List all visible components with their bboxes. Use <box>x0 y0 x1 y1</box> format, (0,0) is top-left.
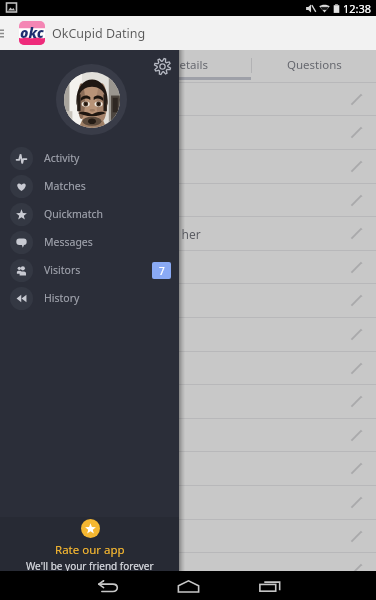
staticText: Sign <box>14 293 39 309</box>
button[interactable]: Quickmatch <box>0 200 179 228</box>
button[interactable]: Questions <box>252 50 376 80</box>
staticText: OkCupid Dating <box>52 25 146 42</box>
button[interactable]: Recents <box>254 573 286 599</box>
button[interactable]: Sign <box>0 284 376 317</box>
staticText: Diet <box>14 193 37 209</box>
staticText: Quickmatch <box>44 207 104 221</box>
staticText: History <box>44 291 80 305</box>
staticText: Ethnicity <box>14 92 63 108</box>
button[interactable]: Back <box>92 573 124 599</box>
button[interactable]: Education <box>0 318 376 351</box>
staticText: Rate our app <box>55 542 125 558</box>
staticText: okc <box>20 23 44 42</box>
button[interactable]: History <box>0 284 179 312</box>
staticText: Messages <box>44 235 93 249</box>
staticText: Details <box>171 57 208 73</box>
button[interactable]: Offspring <box>0 452 376 485</box>
button[interactable]: Religion <box>0 251 376 284</box>
button[interactable]: Languages <box>0 553 376 586</box>
button[interactable]: Body type <box>0 150 376 183</box>
staticText: Languages <box>14 562 76 578</box>
button[interactable]: Matches <box>0 172 179 200</box>
staticText: The six things I value without her <box>14 226 201 242</box>
button[interactable]: Diet <box>0 184 376 217</box>
button[interactable]: Profile photo <box>56 64 127 135</box>
button[interactable]: Speaks <box>0 520 376 553</box>
button[interactable]: Income <box>0 385 376 418</box>
staticText: 12:38 <box>343 1 372 16</box>
staticText: 7 <box>159 264 165 278</box>
staticText: Activity <box>44 151 80 165</box>
button[interactable]: Rate our app <box>0 517 179 571</box>
staticText: Religion <box>14 260 60 276</box>
button[interactable]: Relationship status <box>0 419 376 452</box>
button[interactable]: Visitors <box>0 256 179 284</box>
button[interactable]: Details <box>128 50 251 80</box>
staticText: Questions <box>287 57 342 73</box>
button[interactable]: Messages <box>0 228 179 256</box>
button[interactable]: Job <box>0 352 376 385</box>
button[interactable]: Open navigation drawer <box>0 26 5 40</box>
button[interactable]: Pets <box>0 486 376 519</box>
staticText: Matches <box>44 179 86 193</box>
button[interactable]: The six things I value without her <box>0 217 376 250</box>
staticText: Visitors <box>44 263 81 277</box>
button[interactable]: Home <box>172 573 204 599</box>
button[interactable]: Settings <box>151 55 173 77</box>
button[interactable]: Height <box>0 116 376 149</box>
button[interactable]: Ethnicity <box>0 83 376 116</box>
button[interactable]: Activity <box>0 144 179 172</box>
staticText: We'll be your friend forever <box>26 559 154 571</box>
staticText: Body type <box>14 159 71 175</box>
